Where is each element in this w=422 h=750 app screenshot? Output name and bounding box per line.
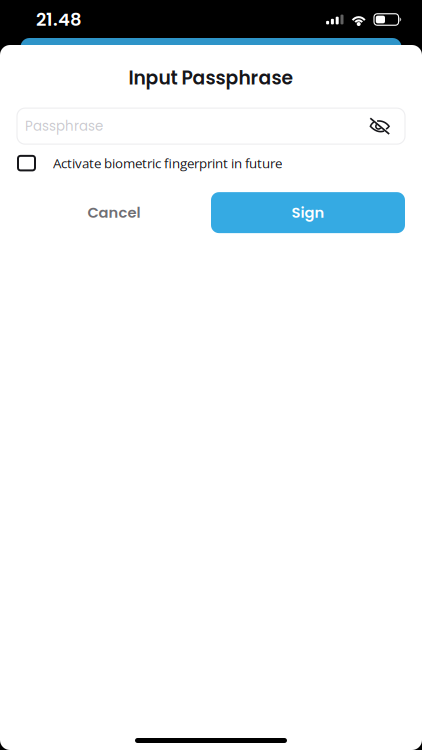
staticText: Cancel (87, 202, 140, 223)
staticText: 21.48 (36, 7, 82, 32)
button[interactable]: Sign (211, 192, 405, 233)
staticText: Passphrase (25, 117, 103, 135)
staticText: Sign (291, 202, 324, 223)
button[interactable]: Show passphrase (369, 117, 390, 135)
staticText: Activate biometric fingerprint in future (53, 154, 282, 172)
staticText: Input Passphrase (128, 65, 293, 91)
button[interactable]: Cancel (67, 192, 161, 233)
button[interactable]: Activate biometric fingerprint in future (0, 150, 422, 176)
